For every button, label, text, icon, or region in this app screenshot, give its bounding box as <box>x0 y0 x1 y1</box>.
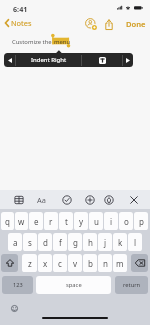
button[interactable]: g <box>68 233 82 251</box>
button[interactable]: Shift <box>1 254 18 272</box>
button[interactable]: l <box>128 233 142 251</box>
staticText: y <box>79 216 84 227</box>
staticText: i <box>110 216 113 227</box>
staticText: menu <box>54 38 71 46</box>
button[interactable]: Notes <box>1 16 38 30</box>
staticText: Indent Right <box>31 56 67 64</box>
button[interactable]: r <box>44 212 58 230</box>
staticText: k <box>118 237 123 248</box>
button[interactable]: j <box>98 233 112 251</box>
button[interactable]: d <box>38 233 52 251</box>
button[interactable]: t <box>59 212 73 230</box>
button[interactable]: s <box>23 233 37 251</box>
button[interactable]: f <box>53 233 67 251</box>
staticText: m <box>116 258 124 269</box>
button[interactable]: Emoji <box>8 302 20 314</box>
staticText: p <box>139 216 144 227</box>
staticText: l <box>134 237 137 248</box>
staticText: s <box>28 237 32 248</box>
staticText: c <box>58 258 62 269</box>
staticText: Done <box>126 19 146 29</box>
button[interactable]: w <box>15 212 28 230</box>
button[interactable]: n <box>98 254 112 272</box>
staticText: e <box>34 216 39 227</box>
staticText: Notes <box>11 18 32 28</box>
staticText: n <box>103 258 108 269</box>
button[interactable]: Share <box>102 17 116 31</box>
button[interactable]: Done <box>122 17 150 31</box>
staticText: z <box>28 258 32 269</box>
button[interactable]: c <box>53 254 67 272</box>
button[interactable]: Next <box>123 53 133 67</box>
staticText: 123 <box>13 281 23 289</box>
button[interactable]: b <box>83 254 97 272</box>
staticText: t <box>65 216 68 227</box>
button[interactable]: Text Format <box>82 53 122 67</box>
staticText: a <box>13 237 18 248</box>
button[interactable]: h <box>83 233 97 251</box>
button[interactable]: m <box>113 254 127 272</box>
staticText: q <box>5 216 10 227</box>
staticText: space <box>66 281 82 289</box>
button[interactable]: i <box>104 212 118 230</box>
staticText: 6:41 <box>13 4 28 14</box>
button[interactable]: Add People <box>84 17 98 31</box>
staticText: x <box>43 258 48 269</box>
button[interactable]: 123 <box>2 276 33 294</box>
button[interactable]: x <box>38 254 52 272</box>
staticText: Customize the <box>12 38 54 46</box>
staticText: r <box>49 216 53 227</box>
staticText: u <box>94 216 99 227</box>
button[interactable]: p <box>134 212 148 230</box>
staticText: f <box>59 237 62 248</box>
button[interactable]: Checklist <box>60 193 74 207</box>
staticText: Aa <box>37 195 46 205</box>
staticText: h <box>88 237 93 248</box>
button[interactable]: e <box>29 212 43 230</box>
staticText: d <box>43 237 48 248</box>
button[interactable]: Table <box>12 193 26 207</box>
button[interactable]: a <box>8 233 22 251</box>
button[interactable]: Insert <box>83 193 97 207</box>
button[interactable]: return <box>115 276 148 294</box>
staticText: w <box>18 216 25 227</box>
staticText: o <box>124 216 129 227</box>
staticText: g <box>73 237 78 248</box>
button[interactable]: z <box>22 254 37 272</box>
button[interactable]: Markup <box>102 193 116 207</box>
staticText: v <box>73 258 78 269</box>
button[interactable]: space <box>36 276 111 294</box>
staticText: b <box>88 258 93 269</box>
staticText: return <box>123 281 141 289</box>
button[interactable]: u <box>89 212 103 230</box>
button[interactable]: k <box>113 233 127 251</box>
button[interactable]: Aa <box>35 193 48 207</box>
button[interactable]: v <box>68 254 82 272</box>
button[interactable]: q <box>1 212 14 230</box>
button[interactable]: y <box>74 212 88 230</box>
button[interactable]: Previous <box>4 53 15 67</box>
button[interactable]: Indent Right <box>16 53 81 67</box>
button[interactable]: o <box>119 212 133 230</box>
staticText: j <box>104 237 107 248</box>
button[interactable]: Backspace <box>131 254 148 272</box>
button[interactable]: Close <box>127 193 141 207</box>
